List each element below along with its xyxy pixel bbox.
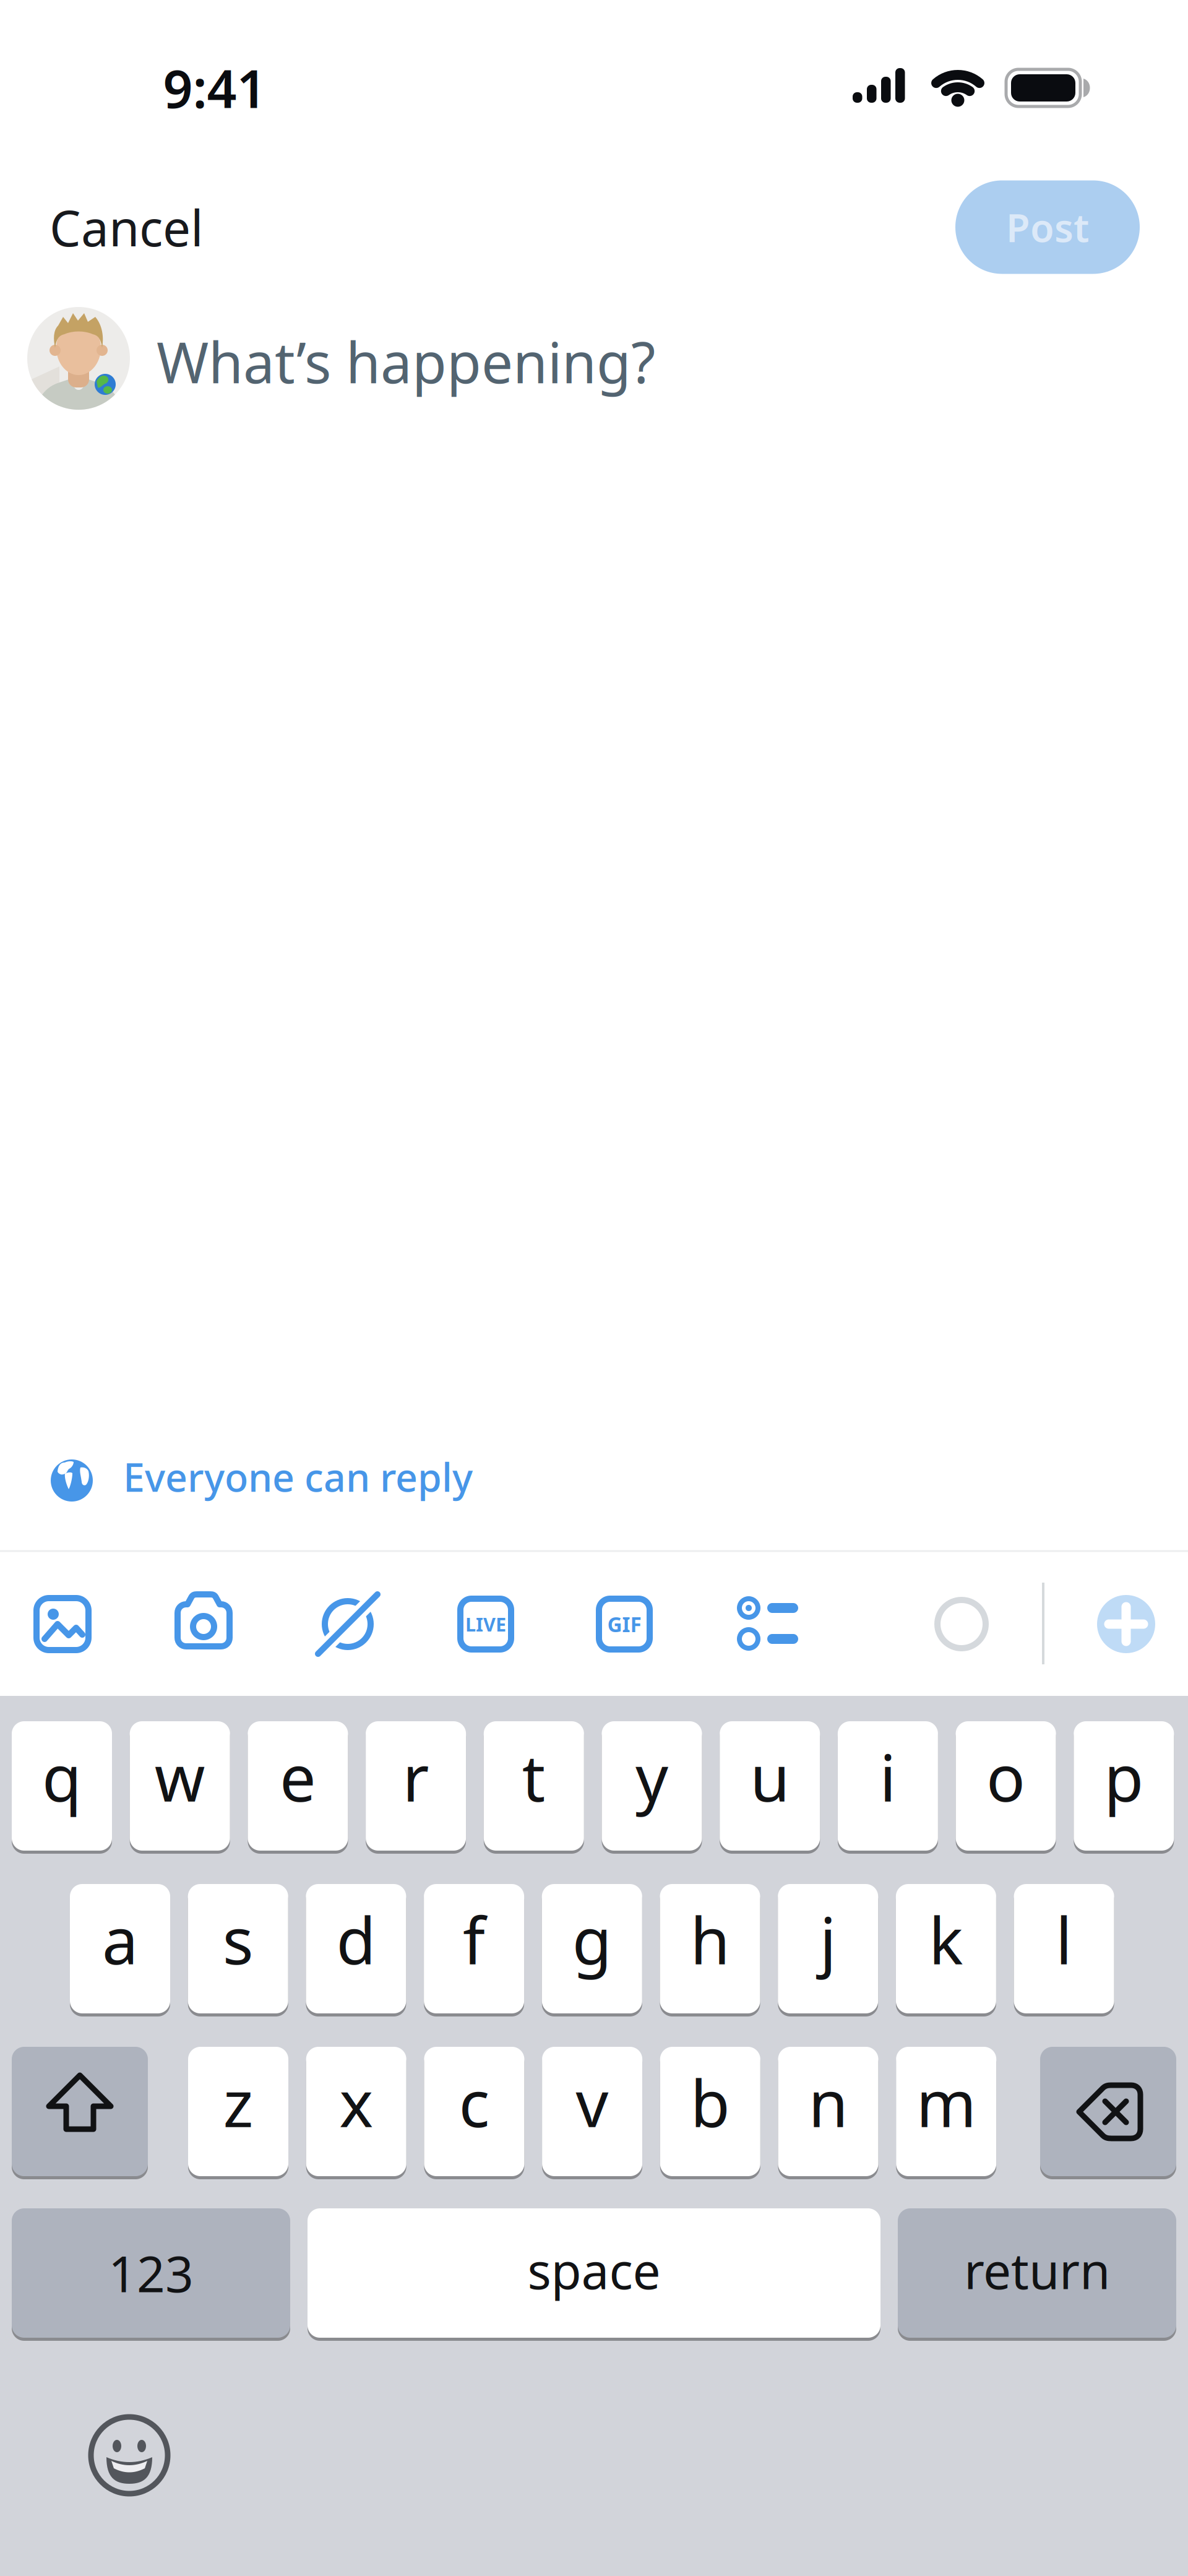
staticText: w [155, 1734, 205, 1819]
staticText: t [522, 1734, 546, 1819]
staticText: Everyone can reply [123, 1451, 473, 1503]
staticText: Cancel [49, 194, 204, 260]
staticText: v [576, 2059, 609, 2145]
staticText: What’s happening? [157, 324, 655, 399]
staticText: j [820, 1897, 836, 1982]
staticText: e [280, 1734, 316, 1819]
staticText: 123 [108, 2240, 194, 2306]
staticText: n [808, 2059, 848, 2145]
staticText: q [42, 1734, 82, 1819]
staticText: k [929, 1897, 963, 1982]
staticText: Post [1006, 201, 1089, 253]
staticText: return [964, 2237, 1110, 2303]
staticText: LIVE [465, 1611, 506, 1637]
staticText: p [1104, 1734, 1144, 1819]
staticText: space [527, 2237, 661, 2303]
staticText: 9:41 [163, 53, 266, 122]
staticText: a [102, 1897, 138, 1982]
staticText: o [986, 1734, 1025, 1819]
staticText: s [223, 1897, 254, 1982]
staticText: l [1056, 1897, 1072, 1982]
staticText: c [459, 2059, 490, 2145]
staticText: g [572, 1897, 612, 1982]
staticText: GIF [607, 1610, 641, 1638]
staticText: i [879, 1734, 896, 1819]
staticText: y [635, 1734, 668, 1819]
staticText: x [339, 2059, 373, 2145]
staticText: f [463, 1897, 485, 1982]
staticText: z [223, 2059, 253, 2145]
staticText: b [690, 2059, 730, 2145]
staticText: m [916, 2059, 976, 2145]
staticText: d [336, 1897, 376, 1982]
staticText: h [690, 1897, 730, 1982]
staticText: u [750, 1734, 790, 1819]
staticText: r [403, 1734, 429, 1819]
